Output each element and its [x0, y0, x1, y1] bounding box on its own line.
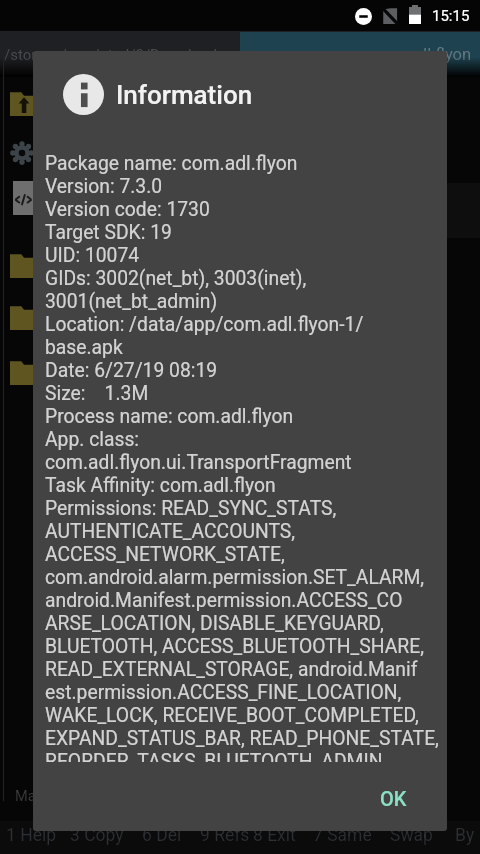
staticText: index.html: [44, 194, 133, 216]
staticText: Documents: [44, 305, 141, 327]
staticText: Package name: com.adl.flyon Version: 7.3…: [45, 152, 439, 762]
button[interactable]: 3 Copy: [64, 821, 124, 854]
button[interactable]: 1 Help: [0, 821, 57, 854]
staticText: By: [455, 825, 475, 846]
button[interactable]: index.html: [0, 180, 480, 232]
staticText: OK: [380, 787, 407, 810]
button[interactable]: Music: [0, 346, 480, 398]
button[interactable]: 9 Refs: [194, 821, 250, 854]
other: Information: [63, 74, 104, 115]
staticText: Music: [44, 360, 96, 382]
button[interactable]: ..: [0, 77, 480, 129]
other: Do not disturb: [355, 8, 372, 25]
staticText: Information: [116, 80, 253, 110]
staticText: Main: [15, 787, 48, 804]
button[interactable]: By: [449, 821, 475, 854]
staticText: 9 Refs: [200, 825, 250, 846]
staticText: config: [44, 141, 97, 163]
staticText: com.adl.flyon: [372, 45, 472, 64]
staticText: 3 Copy: [70, 825, 124, 846]
button[interactable]: Swap: [384, 821, 433, 854]
button[interactable]: 6 Del: [136, 821, 182, 854]
staticText: Android: [44, 253, 111, 275]
button[interactable]: OK: [356, 773, 431, 824]
other: Battery: [409, 5, 421, 24]
button[interactable]: 7 Same: [307, 821, 372, 854]
other: No signal: [380, 6, 399, 26]
button[interactable]: Documents: [0, 291, 480, 343]
button[interactable]: config: [0, 127, 480, 179]
staticText: 6 Del: [142, 825, 182, 846]
staticText: 8 Exit: [253, 825, 296, 846]
staticText: Swap: [390, 825, 433, 846]
staticText: /storage/emulated/0/Download: [4, 46, 217, 64]
staticText: 15:15: [432, 7, 470, 25]
button[interactable]: 8 Exit: [247, 821, 296, 854]
staticText: 7 Same: [313, 825, 372, 846]
staticText: 1 Help: [6, 825, 57, 846]
button[interactable]: Android: [0, 239, 480, 291]
